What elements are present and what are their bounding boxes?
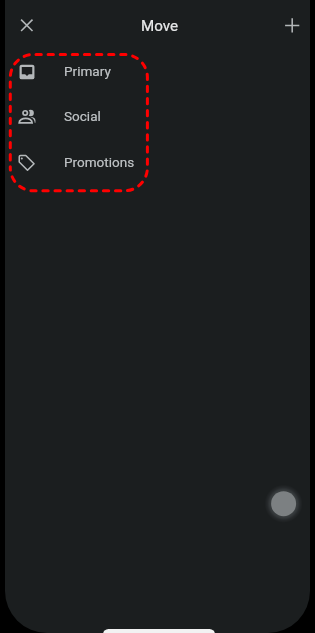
button[interactable]	[5, 94, 310, 140]
staticText: Promotions	[64, 154, 135, 170]
button[interactable]: Compose	[266, 486, 302, 522]
staticText: Social	[64, 108, 101, 124]
staticText: Primary	[64, 63, 111, 79]
button[interactable]	[5, 140, 310, 186]
button[interactable]: Close	[7, 5, 47, 45]
staticText: Move	[141, 17, 179, 35]
button[interactable]: Add	[272, 5, 310, 45]
button[interactable]	[5, 48, 310, 94]
